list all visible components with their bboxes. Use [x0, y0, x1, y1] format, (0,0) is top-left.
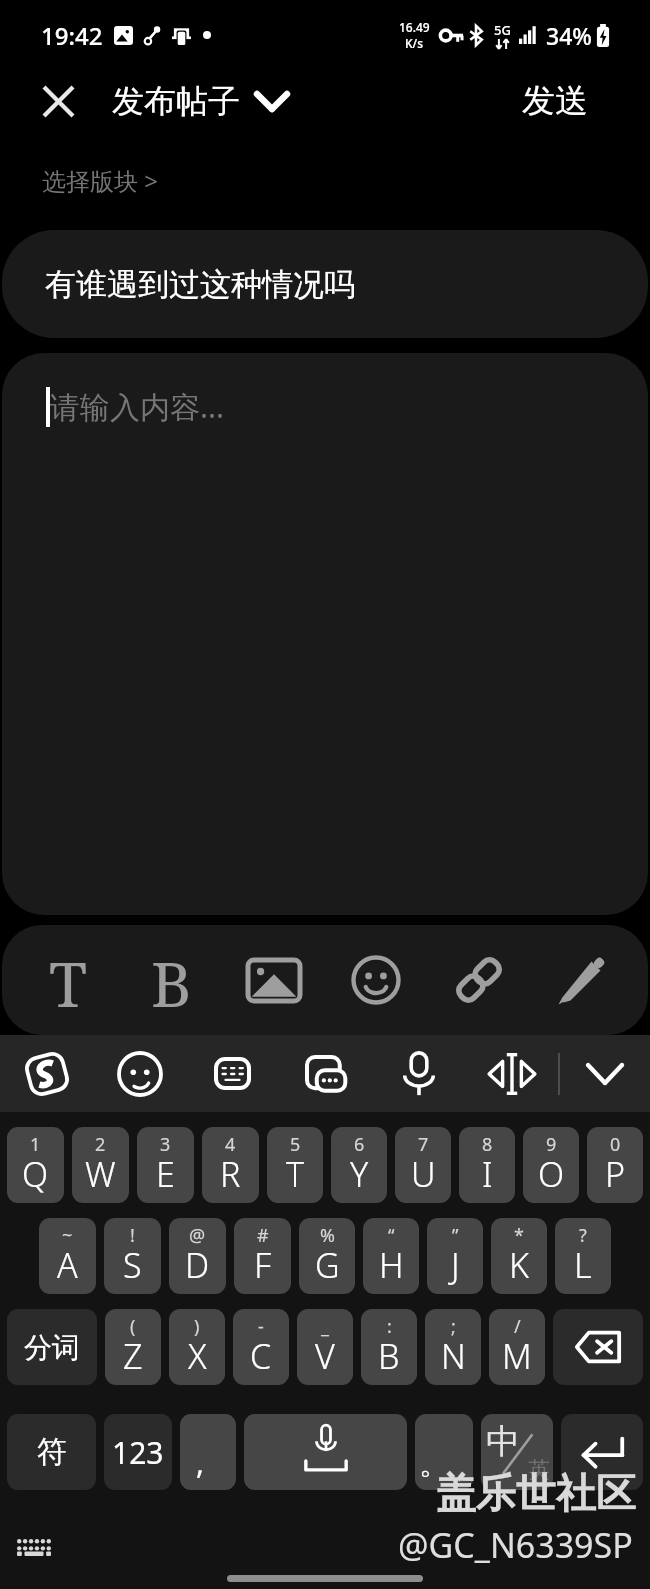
button[interactable]: Keyboard settings — [13, 1526, 55, 1568]
staticText: @GC_N6339SP — [398, 1522, 633, 1568]
staticText: E — [156, 1151, 175, 1197]
staticText: 。 — [419, 1445, 449, 1483]
staticText: W — [85, 1151, 116, 1197]
button[interactable]: ) — [169, 1309, 225, 1385]
staticText: 选择版块 > — [42, 164, 158, 197]
button[interactable]: 发布帖子 — [112, 73, 290, 129]
button[interactable]: ? — [555, 1218, 611, 1294]
button[interactable]: 4 — [202, 1127, 259, 1203]
button[interactable]: 8 — [459, 1127, 515, 1203]
button[interactable]: ( — [105, 1309, 161, 1385]
staticText: ~ — [62, 1223, 73, 1248]
staticText: C — [250, 1333, 272, 1379]
staticText: P — [605, 1151, 626, 1197]
staticText: 0 — [610, 1132, 621, 1157]
button[interactable]: Backspace — [553, 1309, 643, 1385]
staticText: 7 — [418, 1132, 429, 1157]
staticText: 英 — [528, 1456, 550, 1484]
button[interactable]: 选择版块 > — [40, 156, 160, 205]
button[interactable]: 3 — [137, 1127, 194, 1203]
button[interactable]: 1 — [7, 1127, 64, 1203]
staticText: K/s — [405, 35, 424, 51]
button[interactable]: % — [299, 1218, 355, 1294]
button[interactable]: _ — [297, 1309, 353, 1385]
button[interactable]: 7 — [395, 1127, 451, 1203]
button[interactable]: Insert emoji — [337, 941, 415, 1019]
button[interactable]: 2 — [72, 1127, 129, 1203]
staticText: ! — [130, 1223, 135, 1248]
button[interactable]: Emoji — [93, 1035, 186, 1112]
staticText: % — [320, 1223, 335, 1248]
staticText: 16.49 — [399, 19, 430, 35]
staticText: ( — [130, 1314, 136, 1339]
staticText: K — [509, 1242, 529, 1288]
staticText: Z — [123, 1333, 143, 1379]
button[interactable]: Insert link — [440, 941, 518, 1019]
button[interactable]: @ — [169, 1218, 226, 1294]
button[interactable]: 5 — [267, 1127, 323, 1203]
staticText: 5 — [290, 1132, 301, 1157]
staticText: F — [254, 1242, 272, 1288]
staticText: * — [514, 1223, 524, 1248]
button[interactable]: Hide keyboard — [560, 1035, 650, 1112]
button[interactable]: 符 — [7, 1414, 96, 1490]
button[interactable]: Sogou input — [0, 1035, 93, 1112]
staticText: 4 — [225, 1132, 236, 1157]
staticText: 9 — [546, 1132, 557, 1157]
staticText: L — [574, 1242, 592, 1288]
staticText: ) — [194, 1314, 200, 1339]
staticText: “ — [388, 1223, 395, 1248]
button[interactable]: , — [180, 1414, 236, 1490]
staticText: 1 — [30, 1132, 41, 1157]
staticText: # — [257, 1223, 269, 1248]
button[interactable]: “ — [363, 1218, 419, 1294]
button[interactable]: ! — [104, 1218, 161, 1294]
staticText: B — [378, 1333, 400, 1379]
button[interactable]: 9 — [523, 1127, 579, 1203]
staticText: @ — [189, 1223, 206, 1248]
button[interactable]: 分词 — [7, 1309, 97, 1385]
staticText: : — [387, 1314, 392, 1339]
staticText: J — [451, 1242, 460, 1288]
button[interactable]: # — [234, 1218, 291, 1294]
staticText: ? — [579, 1223, 587, 1248]
button[interactable]: Enter — [561, 1414, 643, 1490]
button[interactable]: Draw — [543, 941, 621, 1019]
staticText: U — [411, 1151, 436, 1197]
button[interactable]: Close — [29, 72, 87, 130]
button[interactable]: Switch language — [481, 1414, 553, 1490]
button[interactable]: * — [491, 1218, 547, 1294]
button[interactable]: Space — [244, 1414, 407, 1490]
button[interactable]: 有谁遇到过这种情况吗 — [2, 230, 648, 338]
button[interactable]: Insert image — [235, 941, 313, 1019]
staticText: 8 — [482, 1132, 493, 1157]
button[interactable]: Text style — [29, 941, 107, 1019]
button[interactable]: - — [233, 1309, 289, 1385]
staticText: T — [286, 1151, 305, 1197]
button[interactable]: ~ — [39, 1218, 96, 1294]
staticText: 6 — [354, 1132, 365, 1157]
button[interactable]: Voice input — [372, 1035, 465, 1112]
staticText: Q — [22, 1151, 49, 1197]
staticText: 19:42 — [41, 19, 103, 52]
staticText: 34% — [546, 20, 592, 51]
button[interactable]: ; — [425, 1309, 481, 1385]
button[interactable]: 6 — [331, 1127, 387, 1203]
button[interactable]: 123 — [104, 1414, 172, 1490]
staticText: ; — [451, 1314, 456, 1339]
button[interactable]: 发送 — [510, 68, 600, 134]
button[interactable]: : — [361, 1309, 417, 1385]
button[interactable]: Clipboard — [279, 1035, 372, 1112]
button[interactable]: Move cursor — [465, 1035, 558, 1112]
button[interactable]: Keyboard layout — [186, 1035, 279, 1112]
staticText: 123 — [112, 1432, 164, 1473]
button[interactable]: Bold — [132, 941, 210, 1019]
staticText: N — [441, 1333, 466, 1379]
button[interactable]: 0 — [587, 1127, 643, 1203]
button[interactable]: / — [489, 1309, 545, 1385]
button[interactable]: 。 — [415, 1414, 473, 1490]
staticText: / — [514, 1314, 521, 1339]
button[interactable]: 请输入内容... — [2, 353, 648, 915]
button[interactable]: ” — [427, 1218, 483, 1294]
staticText: Y — [350, 1151, 369, 1197]
